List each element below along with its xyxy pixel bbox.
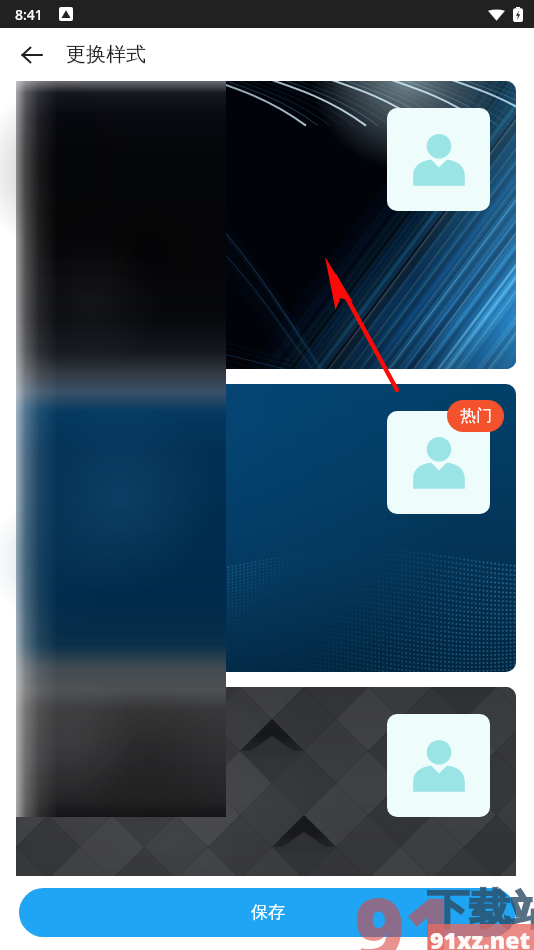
button[interactable]: 热门 — [447, 400, 504, 432]
button[interactable] — [16, 384, 516, 672]
staticText: 更换样式 — [66, 42, 146, 67]
staticText: 91xz.net — [430, 924, 530, 950]
button[interactable]: Back — [10, 33, 54, 77]
button[interactable] — [16, 81, 516, 369]
staticText: 8:41 — [15, 5, 43, 24]
staticText: 热门 — [460, 406, 492, 426]
staticText: 保存 — [251, 902, 285, 923]
staticText: 91 — [354, 869, 455, 950]
button[interactable]: 保存 — [19, 888, 516, 937]
staticText: 下载站 — [427, 884, 534, 937]
button[interactable] — [16, 687, 516, 876]
